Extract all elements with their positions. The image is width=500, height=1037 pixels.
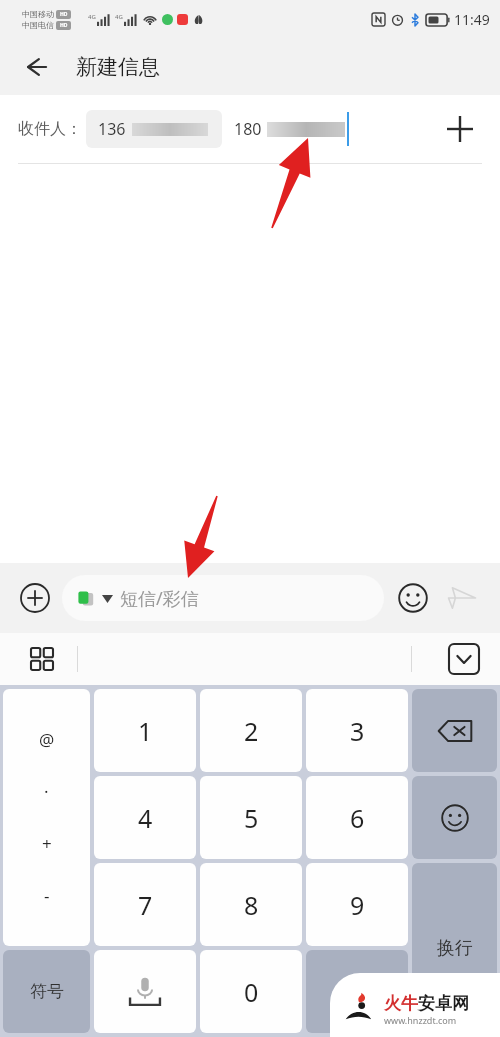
staticText: HD <box>60 11 68 18</box>
staticText: 中国电信 <box>22 20 54 30</box>
staticText: · <box>44 780 49 803</box>
other: Emoji keyboard <box>412 776 497 859</box>
button[interactable]: Keyboard layouts <box>22 639 62 679</box>
button[interactable]: 7 <box>94 863 196 946</box>
staticText: 180 <box>234 118 262 140</box>
staticText: 8 <box>244 888 259 922</box>
button[interactable]: @ <box>3 689 90 946</box>
staticText: 中国移动 <box>22 9 54 19</box>
button[interactable]: 4 <box>94 776 196 859</box>
staticText: 5 <box>244 801 259 835</box>
button[interactable]: 2 <box>200 689 302 772</box>
staticText: 短信/彩信 <box>120 586 199 611</box>
staticText: 换行 <box>437 937 473 960</box>
staticText: - <box>44 884 50 907</box>
staticText: + <box>42 832 52 855</box>
button[interactable]: 6 <box>306 776 408 859</box>
other: Backspace <box>412 689 497 772</box>
staticText: 收件人： <box>18 119 82 139</box>
staticText: 6 <box>350 801 365 835</box>
staticText: 安卓网 <box>418 993 469 1014</box>
button[interactable]: Send <box>436 572 488 624</box>
staticText: 4G <box>115 13 123 21</box>
button[interactable]: 短信/彩信 <box>62 575 384 621</box>
staticText: 3 <box>350 714 365 748</box>
button[interactable]: 0 <box>200 950 302 1033</box>
button[interactable]: 1 <box>94 689 196 772</box>
staticText: 11:49 <box>454 10 490 29</box>
button[interactable]: 返回 <box>306 950 408 1033</box>
button[interactable]: Add contact <box>438 107 482 151</box>
button[interactable]: Voice input / space <box>94 950 196 1033</box>
button[interactable]: Add attachment <box>12 575 58 621</box>
staticText: 7 <box>138 888 153 922</box>
staticText: 136 <box>98 118 126 140</box>
button[interactable]: Emoji <box>390 575 436 621</box>
button[interactable]: 符号 <box>3 950 90 1033</box>
staticText: 返回 <box>339 980 375 1003</box>
button[interactable]: 8 <box>200 863 302 946</box>
staticText: 0 <box>244 975 259 1009</box>
button[interactable]: 换行 <box>412 863 497 1033</box>
button[interactable]: Back <box>14 45 58 89</box>
button[interactable]: 9 <box>306 863 408 946</box>
staticText: HD <box>60 22 68 29</box>
staticText: @ <box>39 728 55 751</box>
button[interactable]: 136 <box>86 110 222 148</box>
staticText: 火牛 <box>384 993 418 1014</box>
staticText: 4 <box>138 801 153 835</box>
staticText: 2 <box>244 714 259 748</box>
staticText: www.hnzzdt.com <box>384 1014 457 1026</box>
staticText: 新建信息 <box>76 54 160 80</box>
staticText: 4G <box>88 13 96 21</box>
staticText: 符号 <box>30 981 64 1002</box>
button[interactable]: Hide keyboard <box>442 637 486 681</box>
staticText: 1 <box>138 714 153 748</box>
button[interactable]: 3 <box>306 689 408 772</box>
other: Voice input / space <box>94 950 196 1033</box>
button[interactable]: Emoji keyboard <box>412 776 497 859</box>
button[interactable]: Backspace <box>412 689 497 772</box>
button[interactable]: 5 <box>200 776 302 859</box>
staticText: 9 <box>350 888 365 922</box>
